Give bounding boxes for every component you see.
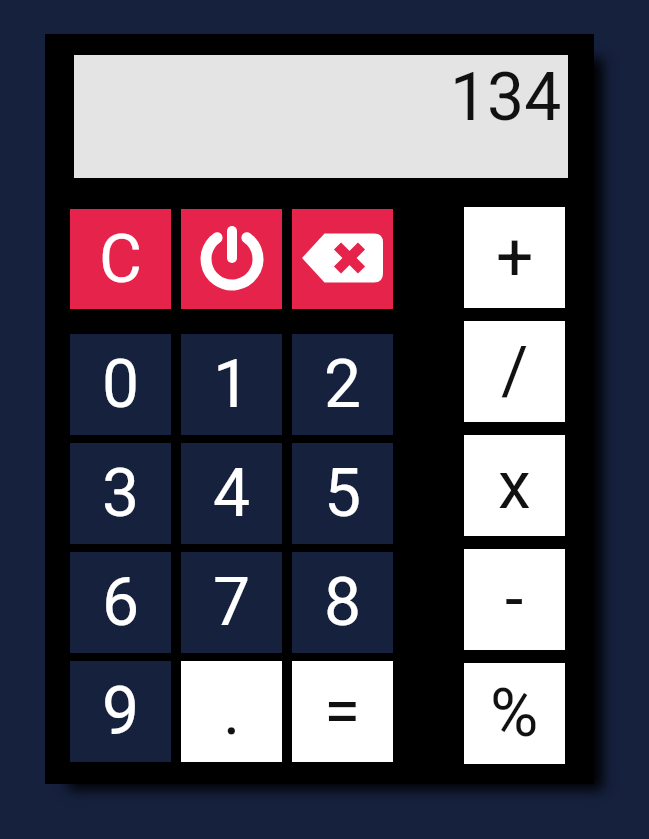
button[interactable]: x (464, 435, 565, 536)
staticText: - (505, 561, 524, 638)
button[interactable]: / (464, 321, 565, 422)
button[interactable]: 9 (70, 661, 171, 762)
button[interactable]: 8 (292, 552, 393, 653)
button[interactable]: 3 (70, 443, 171, 544)
button[interactable]: 0 (70, 334, 171, 435)
staticText: 6 (102, 564, 140, 641)
staticText: + (496, 219, 534, 296)
button[interactable]: 7 (181, 552, 282, 653)
button[interactable]: . (181, 661, 282, 762)
button[interactable]: + (464, 207, 565, 308)
staticText: 2 (324, 346, 362, 423)
staticText: 3 (102, 455, 140, 532)
button[interactable]: 1 (181, 334, 282, 435)
button[interactable]: % (464, 663, 565, 764)
staticText: 134 (450, 59, 562, 136)
staticText: 7 (213, 564, 251, 641)
staticText: 8 (324, 564, 362, 641)
button[interactable]: 5 (292, 443, 393, 544)
staticText: 1 (213, 346, 251, 423)
staticText: 4 (213, 455, 251, 532)
button[interactable] (181, 209, 282, 309)
button[interactable] (292, 209, 393, 309)
staticText: C (99, 221, 142, 298)
button[interactable]: = (292, 661, 393, 762)
button[interactable]: C (70, 209, 171, 309)
staticText: 9 (102, 673, 140, 750)
button[interactable]: 2 (292, 334, 393, 435)
button[interactable]: 6 (70, 552, 171, 653)
staticText: 0 (102, 346, 140, 423)
staticText: / (501, 333, 529, 410)
button[interactable]: 4 (181, 443, 282, 544)
button[interactable]: - (464, 549, 565, 650)
staticText: . (223, 673, 241, 750)
staticText: x (498, 447, 531, 524)
staticText: = (324, 673, 361, 750)
staticText: 5 (324, 455, 362, 532)
staticText: % (490, 675, 539, 752)
